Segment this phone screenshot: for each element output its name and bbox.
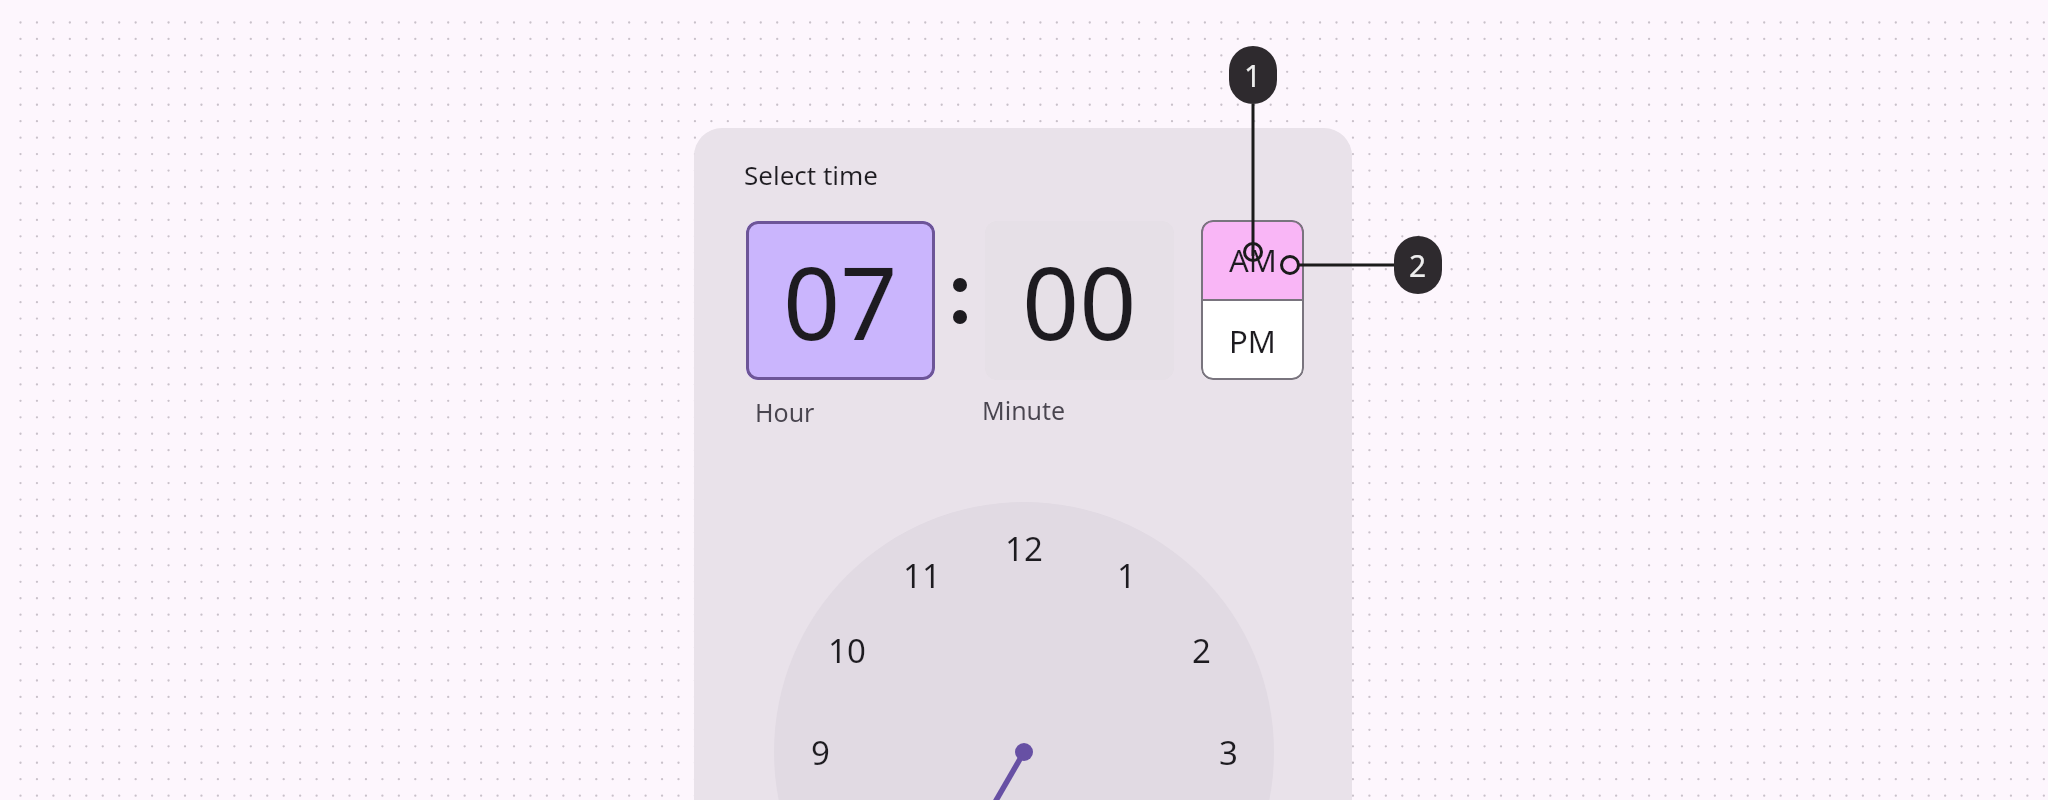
staticText: AM: [1229, 239, 1277, 281]
button[interactable]: 3: [1194, 726, 1262, 778]
staticText: 07: [783, 233, 898, 369]
button[interactable]: 11: [888, 549, 956, 601]
staticText: 1: [1244, 55, 1262, 96]
staticText: 12: [1005, 526, 1043, 571]
button[interactable]: 00: [985, 221, 1174, 380]
staticText: 00: [1022, 233, 1137, 369]
button[interactable]: 12: [990, 522, 1058, 574]
button[interactable]: 10: [813, 624, 881, 676]
button[interactable]: 1: [1092, 549, 1160, 601]
button[interactable]: Annotation marker 2: [1394, 236, 1442, 294]
staticText: 1: [1117, 553, 1136, 598]
button[interactable]: 2: [1167, 624, 1235, 676]
button[interactable]: Annotation marker 1: [1229, 46, 1277, 104]
staticText: Select time: [744, 157, 879, 192]
button[interactable]: 07: [746, 221, 935, 380]
staticText: 11: [903, 553, 941, 598]
staticText: 3: [1219, 730, 1238, 775]
staticText: PM: [1229, 320, 1276, 362]
button[interactable]: PM: [1201, 301, 1304, 380]
button[interactable]: AM: [1201, 220, 1304, 299]
staticText: 2: [1192, 628, 1211, 673]
staticText: Minute: [982, 393, 1066, 427]
staticText: 10: [828, 628, 866, 673]
staticText: 2: [1409, 245, 1427, 286]
staticText: 9: [811, 730, 830, 775]
staticText: Hour: [755, 395, 815, 429]
button[interactable]: 9: [786, 726, 854, 778]
